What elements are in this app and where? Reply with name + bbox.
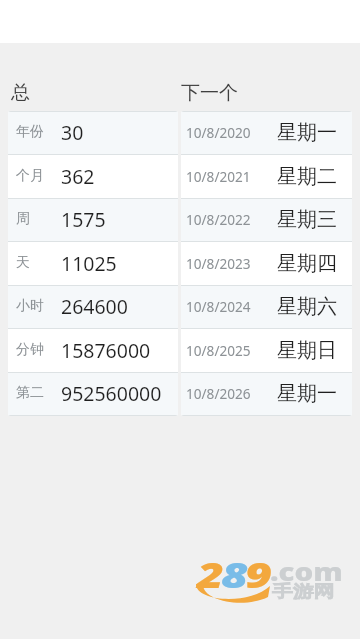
button[interactable]: 周 bbox=[8, 197, 178, 241]
staticText: 10/8/2024 bbox=[186, 297, 251, 316]
staticText: 星期六 bbox=[277, 294, 337, 319]
staticText: 10/8/2023 bbox=[186, 254, 251, 273]
staticText: 10/8/2021 bbox=[186, 167, 251, 186]
staticText: 15876000 bbox=[61, 337, 151, 364]
staticText: 30 bbox=[61, 119, 84, 146]
staticText: 10/8/2025 bbox=[186, 341, 251, 360]
button[interactable]: 个月 bbox=[8, 154, 178, 198]
button[interactable]: 10/8/2026 bbox=[181, 371, 352, 415]
staticText: 第二 bbox=[16, 384, 44, 402]
staticText: 小时 bbox=[16, 297, 44, 315]
staticText: 2 bbox=[197, 551, 225, 598]
staticText: 星期二 bbox=[277, 164, 337, 189]
staticText: 星期一 bbox=[277, 381, 337, 406]
button[interactable]: 10/8/2021 bbox=[181, 154, 352, 198]
staticText: 8 bbox=[221, 551, 249, 598]
staticText: 下一个 bbox=[181, 81, 238, 105]
staticText: 10/8/2022 bbox=[186, 210, 251, 229]
button[interactable]: 第二 bbox=[8, 371, 178, 415]
button[interactable]: 年份 bbox=[8, 110, 178, 154]
staticText: 年份 bbox=[16, 123, 44, 141]
staticText: 星期四 bbox=[277, 251, 337, 276]
staticText: 10/8/2020 bbox=[186, 123, 251, 142]
button[interactable]: 10/8/2024 bbox=[181, 284, 352, 328]
staticText: 分钟 bbox=[16, 341, 44, 359]
staticText: 11025 bbox=[61, 250, 117, 277]
staticText: 星期日 bbox=[277, 338, 337, 363]
staticText: 264600 bbox=[61, 293, 128, 320]
button[interactable]: 小时 bbox=[8, 284, 178, 328]
button[interactable]: 10/8/2025 bbox=[181, 328, 352, 372]
staticText: 362 bbox=[61, 163, 95, 190]
staticText: 周 bbox=[16, 210, 30, 228]
staticText: 9 bbox=[245, 551, 272, 598]
staticText: 个月 bbox=[16, 167, 44, 185]
staticText: 星期三 bbox=[277, 207, 337, 232]
staticText: .com bbox=[270, 554, 343, 588]
staticText: 星期一 bbox=[277, 120, 337, 145]
button[interactable]: 总 bbox=[11, 81, 30, 105]
button[interactable]: 10/8/2022 bbox=[181, 197, 352, 241]
button[interactable]: 分钟 bbox=[8, 328, 178, 372]
staticText: 952560000 bbox=[61, 380, 162, 407]
staticText: 10/8/2026 bbox=[186, 384, 251, 403]
button[interactable]: 10/8/2023 bbox=[181, 241, 352, 285]
button[interactable]: 10/8/2020 bbox=[181, 110, 352, 154]
staticText: 总 bbox=[11, 81, 30, 105]
staticText: 手游网 bbox=[272, 582, 334, 602]
staticText: 天 bbox=[16, 254, 30, 272]
button[interactable]: 下一个 bbox=[181, 81, 238, 105]
button[interactable]: 天 bbox=[8, 241, 178, 285]
staticText: 1575 bbox=[61, 206, 106, 233]
